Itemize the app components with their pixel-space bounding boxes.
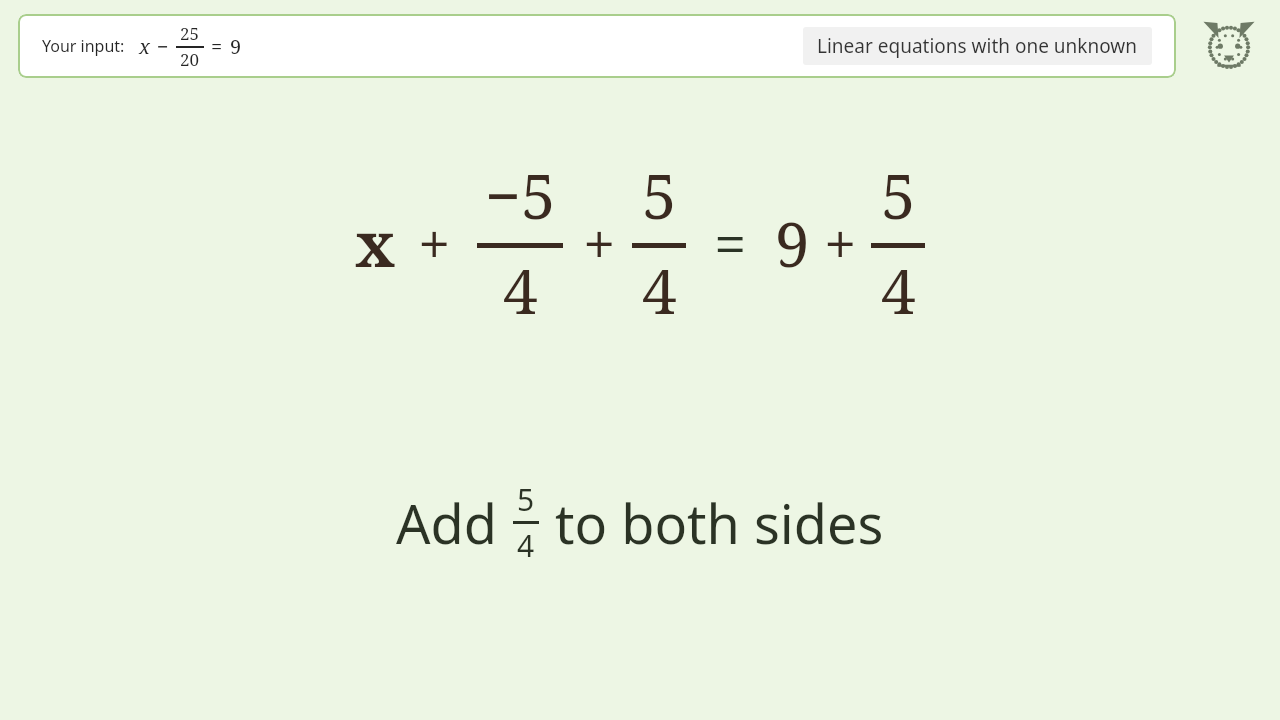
staticText: Linear equations with one unknown [817, 33, 1138, 59]
staticText: 9 [230, 33, 242, 60]
staticText: + [583, 203, 616, 282]
staticText: 9 [775, 201, 810, 285]
staticText: 4 [642, 248, 677, 332]
staticText: = [211, 33, 223, 60]
staticText: −5 [485, 153, 556, 237]
staticText: + [418, 203, 451, 282]
staticText: x [139, 33, 150, 60]
staticText: 4 [881, 248, 916, 332]
staticText: to both sides [555, 486, 884, 560]
staticText: = [714, 203, 747, 282]
staticText: − [157, 33, 169, 60]
staticText: 5 [642, 153, 677, 237]
button[interactable]: Logo [1200, 16, 1258, 74]
staticText: x [355, 201, 396, 285]
button[interactable]: Linear equations with one unknown [803, 27, 1152, 65]
staticText: 4 [517, 525, 535, 566]
staticText: Add [396, 486, 497, 560]
button[interactable]: Your input: [18, 14, 1176, 78]
staticText: 25 [180, 22, 200, 45]
staticText: + [824, 203, 857, 282]
staticText: 5 [881, 153, 916, 237]
staticText: 5 [517, 479, 535, 520]
staticText: Your input: [42, 35, 125, 57]
staticText: 20 [180, 48, 200, 71]
staticText: 4 [503, 248, 538, 332]
